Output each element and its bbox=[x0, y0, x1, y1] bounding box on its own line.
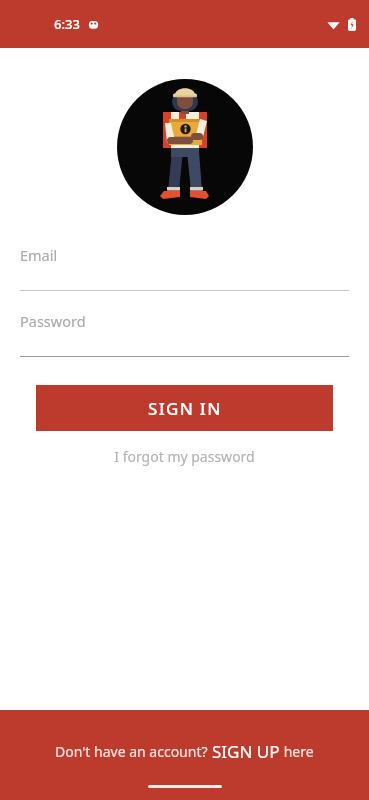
staticText: 6:33 bbox=[54, 15, 80, 33]
button[interactable]: SIGN IN bbox=[36, 385, 333, 431]
staticText: SIGN UP bbox=[212, 740, 280, 763]
button[interactable]: Email bbox=[20, 245, 349, 291]
staticText: here bbox=[280, 742, 314, 761]
staticText: SIGN IN bbox=[148, 397, 222, 420]
button[interactable]: Don't have an account? bbox=[0, 710, 369, 800]
staticText: Don't have an account? bbox=[55, 742, 212, 761]
staticText: Email bbox=[20, 245, 58, 265]
staticText: Password bbox=[20, 311, 86, 331]
button[interactable]: Password bbox=[20, 311, 349, 357]
staticText: I forgot my password bbox=[114, 447, 255, 466]
button[interactable]: I forgot my password bbox=[0, 442, 369, 471]
other: Profile illustration bbox=[117, 79, 253, 215]
